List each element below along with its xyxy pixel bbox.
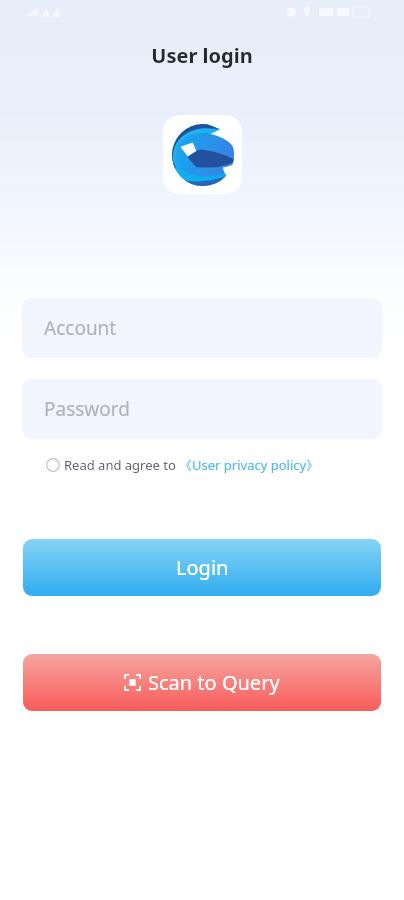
button[interactable]: 《User privacy policy》 [179,456,320,474]
staticText: Read and agree to [64,456,176,474]
other: Scan [124,674,141,691]
staticText: Login [176,554,229,581]
staticText: Scan to Query [148,669,280,696]
button[interactable]: Account [22,298,382,358]
button[interactable]: Scan [23,654,381,711]
button[interactable]: Read and agree to [46,456,320,474]
button[interactable]: Login [23,539,381,596]
button[interactable]: Password [22,379,382,439]
staticText: Password [44,396,130,422]
staticText: Account [44,315,117,341]
staticText: User login [0,42,404,69]
